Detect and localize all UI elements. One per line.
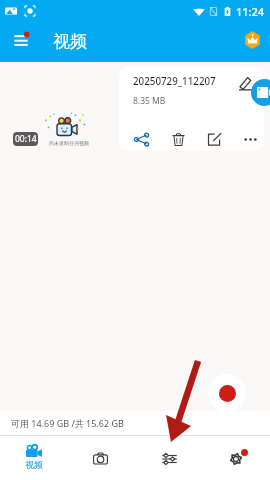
button[interactable]: VIP (239, 30, 263, 54)
button[interactable]: Camera (67, 435, 134, 480)
button[interactable]: 20250729_112207 (119, 67, 264, 151)
staticText: 11:24 (236, 4, 265, 19)
button[interactable]: Edit (200, 127, 229, 151)
button[interactable]: Delete (164, 127, 193, 151)
button[interactable]: More (236, 127, 264, 151)
staticText: 尚未录制任何视频 (49, 140, 89, 146)
button[interactable]: Record video (251, 79, 270, 106)
button[interactable]: Share (127, 127, 156, 151)
staticText: 可用 14.69 GB /共 15.62 GB (11, 417, 124, 429)
staticText: 视频 (53, 31, 87, 52)
button[interactable]: Settings (136, 435, 203, 480)
button[interactable]: 视频 (0, 435, 67, 480)
button[interactable]: Rename (238, 75, 254, 91)
button[interactable]: Menu (6, 28, 34, 56)
staticText: 20250729_112207 (133, 75, 216, 88)
staticText: 00:14 (15, 133, 37, 145)
staticText: 视频 (25, 459, 43, 470)
button[interactable]: Record (208, 374, 246, 412)
button[interactable]: Preferences (202, 435, 269, 480)
staticText: 8.35 MB (133, 95, 166, 107)
